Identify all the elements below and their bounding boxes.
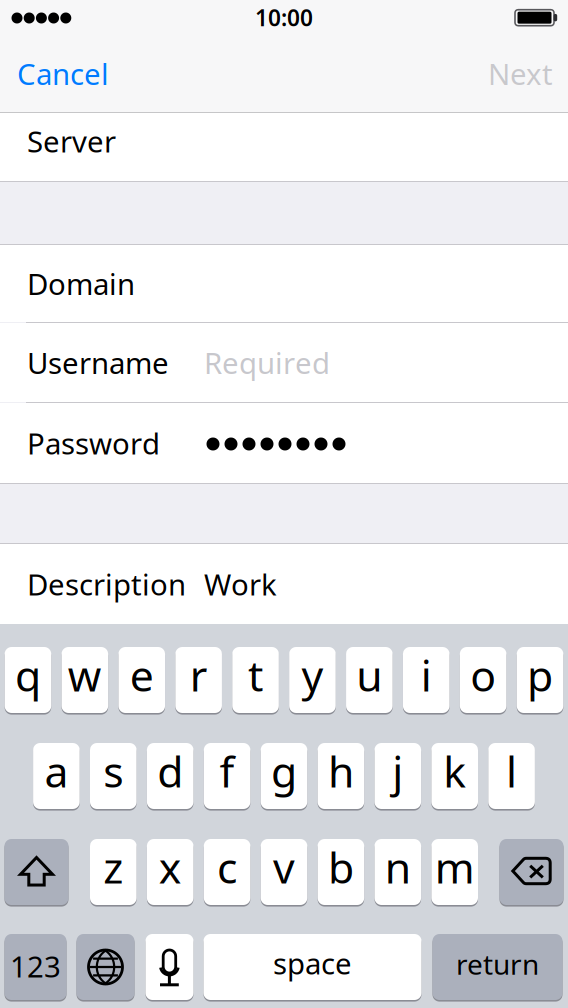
button[interactable]: c	[204, 838, 250, 906]
staticText: 123	[10, 946, 61, 985]
button[interactable]: Password	[0, 403, 568, 483]
button[interactable]: Next	[388, 40, 568, 113]
staticText: Next	[488, 54, 553, 93]
staticText: t	[248, 647, 263, 703]
button[interactable]: p	[517, 646, 563, 714]
staticText: e	[130, 647, 154, 703]
staticText: h	[328, 743, 354, 799]
staticText: Description	[27, 564, 186, 603]
button[interactable]: space	[203, 933, 421, 1001]
button[interactable]: t	[232, 646, 279, 714]
button[interactable]: w	[61, 646, 108, 714]
staticText: p	[527, 647, 553, 703]
button[interactable]: Next keyboard	[76, 933, 134, 1001]
staticText: z	[103, 839, 123, 895]
staticText: s	[103, 743, 123, 799]
staticText: b	[328, 839, 354, 895]
button[interactable]: m	[431, 838, 478, 906]
staticText: w	[68, 647, 102, 703]
staticText: u	[356, 647, 382, 703]
staticText: Username	[27, 343, 169, 382]
button[interactable]: 123	[4, 933, 66, 1001]
staticText: r	[190, 647, 208, 703]
button[interactable]: Username	[0, 323, 568, 402]
staticText: g	[271, 743, 297, 799]
button[interactable]: Shift	[4, 838, 68, 906]
button[interactable]: i	[403, 646, 449, 714]
button[interactable]: Delete	[499, 838, 563, 906]
button[interactable]: Description	[0, 544, 568, 624]
staticText: o	[470, 647, 496, 703]
button[interactable]: x	[147, 838, 193, 906]
button[interactable]: Cancel	[0, 40, 180, 113]
staticText: y	[301, 647, 323, 703]
button[interactable]: l	[488, 742, 535, 810]
button[interactable]: o	[460, 646, 506, 714]
button[interactable]: q	[5, 646, 51, 714]
staticText: d	[157, 743, 183, 799]
button[interactable]: y	[289, 646, 336, 714]
button[interactable]: h	[318, 742, 364, 810]
button[interactable]: n	[374, 838, 421, 906]
button[interactable]: r	[175, 646, 222, 714]
button[interactable]: z	[90, 838, 137, 906]
button[interactable]: j	[374, 742, 421, 810]
button[interactable]: Dictation	[145, 933, 193, 1001]
staticText: return	[456, 945, 539, 983]
button[interactable]: b	[318, 838, 364, 906]
staticText: l	[506, 743, 517, 799]
staticText: Password	[27, 423, 160, 462]
button[interactable]: g	[261, 742, 307, 810]
button[interactable]: d	[147, 742, 193, 810]
staticText: space	[273, 943, 352, 982]
button[interactable]: u	[346, 646, 393, 714]
button[interactable]: k	[431, 742, 478, 810]
staticText: m	[435, 839, 475, 895]
staticText: c	[217, 839, 237, 895]
staticText: Required	[204, 343, 330, 382]
staticText: i	[421, 647, 432, 703]
button[interactable]: a	[33, 742, 80, 810]
button[interactable]: Server	[0, 113, 568, 181]
button[interactable]: e	[118, 646, 165, 714]
button[interactable]: f	[204, 742, 250, 810]
staticText: a	[44, 743, 68, 799]
button[interactable]: return	[432, 933, 562, 1001]
staticText: f	[220, 743, 235, 799]
staticText: Work	[204, 564, 277, 603]
button[interactable]: s	[90, 742, 137, 810]
staticText: Domain	[27, 264, 135, 303]
staticText: x	[159, 839, 182, 895]
staticText: q	[15, 647, 41, 703]
staticText: Server	[27, 121, 116, 160]
staticText: 10:00	[255, 2, 313, 32]
button[interactable]: v	[261, 838, 307, 906]
staticText: v	[273, 839, 295, 895]
staticText: Cancel	[17, 54, 109, 93]
button[interactable]: Domain	[0, 245, 568, 322]
staticText: n	[385, 839, 411, 895]
staticText: j	[392, 743, 403, 799]
staticText: k	[443, 743, 466, 799]
